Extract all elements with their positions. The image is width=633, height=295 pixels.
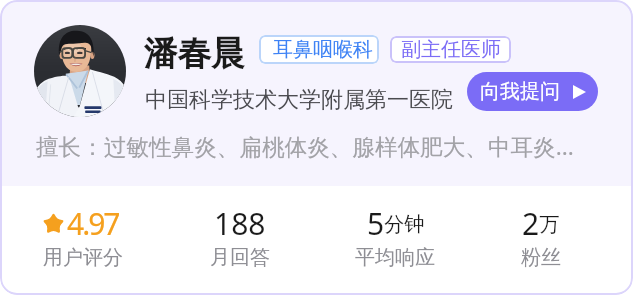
- staticText: 粉丝: [521, 245, 561, 270]
- button[interactable]: 副主任医师: [390, 36, 511, 63]
- staticText: 中国科学技术大学附属第一医院: [145, 86, 453, 114]
- staticText: 耳鼻咽喉科: [273, 37, 373, 62]
- button[interactable]: 耳鼻咽喉科: [259, 35, 379, 64]
- button[interactable]: 5分钟: [295, 203, 495, 265]
- button[interactable]: 向我提问: [467, 72, 598, 111]
- staticText: 向我提问: [480, 79, 560, 104]
- staticText: 2万: [522, 203, 560, 244]
- button[interactable]: 4.97: [0, 203, 183, 265]
- staticText: 188: [214, 203, 266, 244]
- staticText: 月回答: [210, 245, 270, 270]
- staticText: 平均响应: [355, 245, 435, 270]
- button[interactable]: 2万: [441, 203, 633, 265]
- staticText: 副主任医师: [401, 37, 501, 62]
- button[interactable]: 188: [140, 203, 340, 265]
- staticText: 擅长：过敏性鼻炎、扁桃体炎、腺样体肥大、中耳炎...: [36, 131, 574, 162]
- staticText: 用户评分: [43, 245, 123, 270]
- staticText: 4.97: [67, 203, 119, 244]
- staticText: 5分钟: [367, 203, 425, 244]
- staticText: 潘春晨: [144, 33, 245, 75]
